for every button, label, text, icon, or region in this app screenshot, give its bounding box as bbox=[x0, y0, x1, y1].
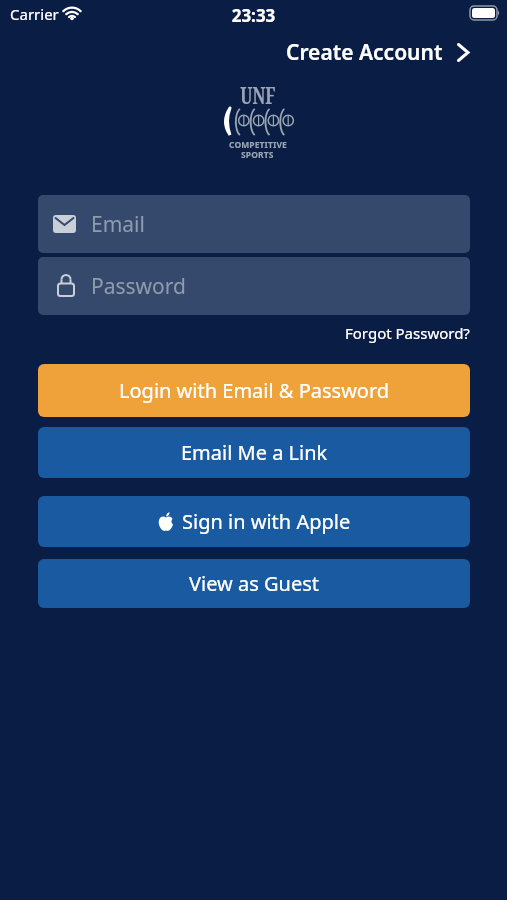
staticText: Password bbox=[91, 272, 186, 301]
staticText: View as Guest bbox=[189, 570, 319, 597]
button[interactable]: Sign in with Apple bbox=[38, 496, 470, 547]
staticText: COMPETITIVE bbox=[229, 139, 287, 151]
button[interactable]: View as Guest bbox=[38, 559, 470, 608]
staticText: Email bbox=[91, 210, 145, 239]
button[interactable]: Create Account bbox=[286, 38, 470, 67]
button[interactable]: Email bbox=[38, 195, 470, 253]
staticText: Carrier bbox=[10, 4, 59, 24]
button[interactable]: Password bbox=[38, 257, 470, 315]
staticText: UNF bbox=[240, 78, 276, 111]
staticText: SPORTS bbox=[241, 149, 274, 161]
button[interactable]: Forgot Password? bbox=[345, 323, 470, 343]
staticText: 23:33 bbox=[0, 4, 507, 27]
staticText: Create Account bbox=[286, 38, 443, 67]
staticText: Email Me a Link bbox=[181, 439, 328, 466]
button[interactable]: Email Me a Link bbox=[38, 427, 470, 478]
button[interactable]: Login with Email & Password bbox=[38, 364, 470, 417]
staticText: Sign in with Apple bbox=[182, 508, 351, 535]
staticText: Login with Email & Password bbox=[119, 377, 390, 404]
